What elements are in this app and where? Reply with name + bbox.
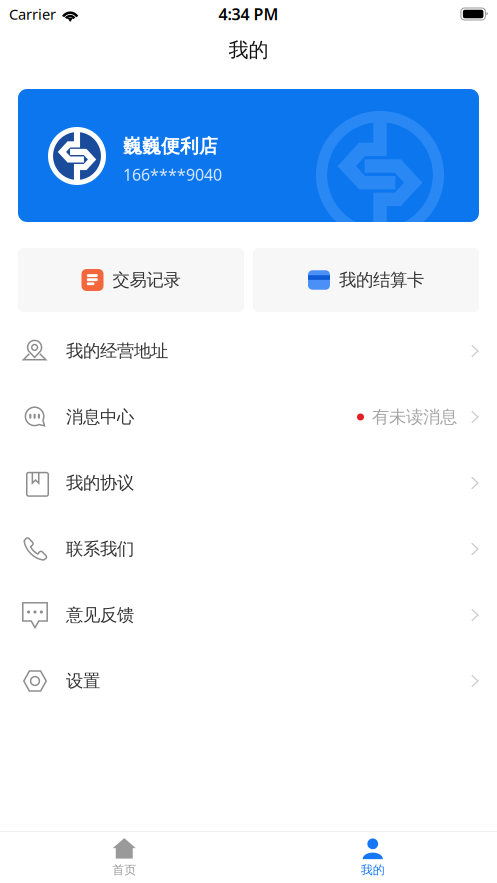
button[interactable]: 意见反馈 <box>0 582 497 648</box>
staticText: 我的 <box>361 863 385 877</box>
staticText: Carrier <box>9 4 56 24</box>
button[interactable]: 我的 <box>248 831 497 883</box>
staticText: 交易记录 <box>112 269 180 291</box>
button[interactable]: 我的结算卡 <box>253 248 479 312</box>
staticText: 我的经营地址 <box>66 340 168 362</box>
staticText: 意见反馈 <box>66 604 134 626</box>
button[interactable]: 我的协议 <box>0 450 497 516</box>
staticText: 4:34 PM <box>218 3 278 25</box>
button[interactable]: 我的经营地址 <box>0 318 497 384</box>
staticText: 我的协议 <box>66 472 134 494</box>
staticText: 首页 <box>112 863 136 877</box>
button[interactable]: 交易记录 <box>18 248 244 312</box>
button[interactable]: 设置 <box>0 648 497 714</box>
staticText: 巍巍便利店 <box>123 135 218 158</box>
button[interactable]: 首页 <box>0 831 248 883</box>
button[interactable]: 联系我们 <box>0 516 497 582</box>
staticText: 有未读消息 <box>372 406 457 428</box>
staticText: 166****9040 <box>123 164 222 185</box>
staticText: 联系我们 <box>66 538 134 560</box>
staticText: 我的结算卡 <box>339 269 424 291</box>
staticText: 消息中心 <box>66 406 134 428</box>
button[interactable]: 消息中心 <box>0 384 497 450</box>
staticText: 我的 <box>228 38 268 62</box>
staticText: 设置 <box>66 670 100 692</box>
